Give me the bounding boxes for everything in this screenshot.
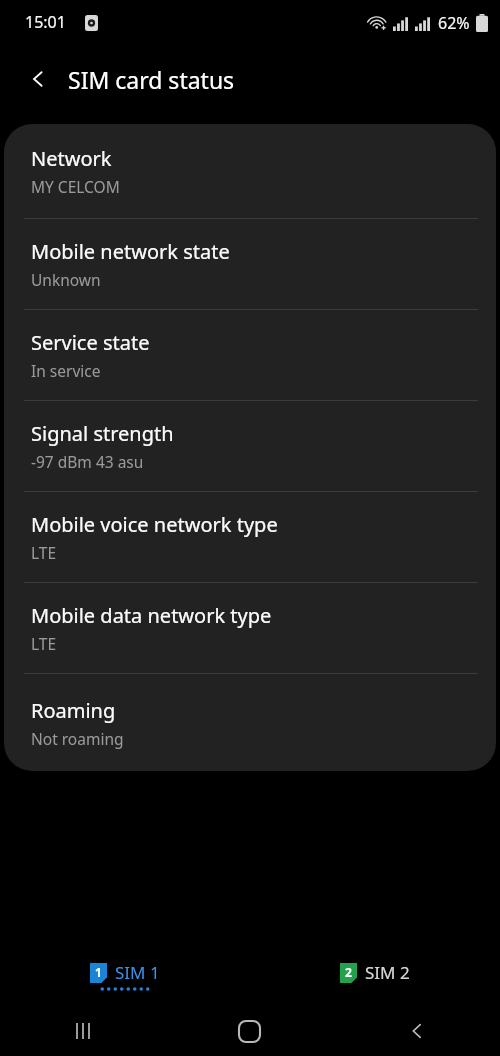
button[interactable]: Service state — [4, 310, 496, 400]
button[interactable]: Back — [14, 55, 62, 103]
button[interactable]: Signal strength — [4, 401, 496, 491]
button[interactable]: Recent apps — [0, 1006, 166, 1056]
staticText: Not roaming — [31, 728, 124, 749]
button[interactable]: Network — [4, 124, 496, 218]
staticText: SIM 1 — [115, 961, 160, 984]
button[interactable]: Mobile voice network type — [4, 492, 496, 582]
button[interactable]: 2 — [250, 946, 500, 1006]
staticText: 1 — [95, 964, 102, 980]
staticText: 15:01 — [25, 11, 66, 33]
button[interactable]: Roaming — [4, 674, 496, 771]
button[interactable]: Back — [333, 1006, 500, 1056]
staticText: Signal strength — [31, 420, 174, 447]
staticText: Mobile network state — [31, 238, 230, 265]
staticText: 2 — [345, 964, 352, 980]
staticText: Roaming — [31, 697, 116, 724]
staticText: SIM 2 — [365, 961, 410, 984]
staticText: 62% — [438, 12, 470, 34]
staticText: Mobile voice network type — [31, 511, 278, 538]
staticText: Unknown — [31, 269, 101, 290]
staticText: In service — [31, 360, 101, 381]
staticText: LTE — [31, 542, 57, 563]
button[interactable]: Mobile data network type — [4, 583, 496, 673]
staticText: Mobile data network type — [31, 602, 272, 629]
button[interactable]: Home — [166, 1006, 333, 1056]
staticText: MY CELCOM — [31, 176, 120, 197]
staticText: LTE — [31, 633, 57, 654]
staticText: Service state — [31, 329, 150, 356]
staticText: Network — [31, 145, 112, 172]
button[interactable]: Mobile network state — [4, 219, 496, 309]
staticText: -97 dBm 43 asu — [31, 451, 144, 472]
button[interactable]: 1 — [0, 946, 250, 1006]
staticText: SIM card status — [68, 64, 235, 95]
